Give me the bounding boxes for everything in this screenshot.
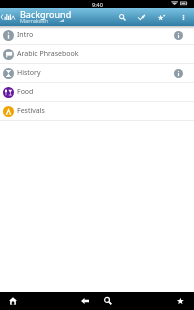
button[interactable]: Favorite: [151, 8, 172, 26]
staticText: 9:40: [92, 1, 103, 8]
button[interactable]: More info: [162, 26, 194, 44]
staticText: History: [17, 68, 41, 78]
staticText: Festivals: [17, 106, 45, 116]
staticText: Background: [20, 8, 72, 20]
button[interactable]: Search: [97, 292, 119, 310]
button[interactable]: Back: [73, 292, 97, 310]
button[interactable]: Navigate up: [0, 8, 15, 26]
button[interactable]: Favorites: [168, 292, 194, 310]
button[interactable]: Edit: [132, 8, 151, 26]
button[interactable]: History: [0, 64, 194, 82]
staticText: Food: [17, 87, 34, 97]
button[interactable]: Intro: [0, 26, 194, 44]
button[interactable]: Food: [0, 83, 194, 101]
staticText: Arabic Phrasebook: [17, 49, 79, 59]
staticText: Intro: [17, 30, 34, 40]
button[interactable]: Home: [0, 292, 26, 310]
button[interactable]: Background: [15, 8, 113, 26]
button[interactable]: Search: [113, 8, 132, 26]
button[interactable]: More options: [172, 8, 194, 26]
button[interactable]: Arabic Phrasebook: [0, 45, 194, 63]
button[interactable]: Festivals: [0, 102, 194, 120]
staticText: Marrakesh: [20, 17, 49, 25]
button[interactable]: More info: [162, 64, 194, 82]
